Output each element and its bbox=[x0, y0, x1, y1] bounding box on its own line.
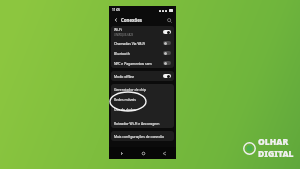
staticText: Wi-Fi bbox=[114, 27, 122, 32]
button[interactable]: Redes móveis bbox=[111, 94, 174, 104]
staticText: Modo offline bbox=[114, 74, 135, 79]
button[interactable]: Toggle bbox=[163, 41, 171, 45]
staticText: Bluetooth bbox=[114, 51, 130, 56]
button[interactable]: Gerenciador de chip bbox=[111, 84, 174, 94]
button[interactable]: Chamadas Via Wi-Fi bbox=[111, 38, 174, 48]
button[interactable]: Mais configurações de conexão bbox=[111, 131, 174, 141]
button[interactable]: Recents bbox=[117, 149, 125, 157]
button[interactable]: Toggle bbox=[163, 74, 171, 78]
button[interactable]: Home bbox=[139, 149, 147, 157]
staticText: Uso de dados bbox=[114, 107, 136, 112]
staticText: Roteador Wi-Fi e Ancoragem bbox=[114, 121, 160, 126]
button[interactable]: Roteador Wi-Fi e Ancoragem bbox=[111, 118, 174, 128]
staticText: UNIFIQUE-6823 bbox=[114, 33, 134, 37]
staticText: Chamadas Via Wi-Fi bbox=[114, 41, 146, 46]
button[interactable]: Bluetooth bbox=[111, 48, 174, 58]
staticText: Gerenciador de chip bbox=[114, 87, 147, 92]
button[interactable]: Back bbox=[112, 16, 120, 24]
staticText: Redes móveis bbox=[114, 97, 136, 102]
button[interactable]: Toggle bbox=[163, 30, 171, 34]
staticText: Conexões bbox=[121, 17, 142, 23]
button[interactable]: Toggle bbox=[163, 51, 171, 55]
staticText: Mais configurações de conexão bbox=[114, 134, 164, 139]
button[interactable]: Uso de dados bbox=[111, 104, 174, 114]
staticText: NFC e Pagamentos sem contato bbox=[114, 61, 163, 66]
staticText: OLHAR bbox=[258, 136, 289, 148]
button[interactable]: NFC e Pagamentos sem contato bbox=[111, 58, 174, 68]
staticText: DIGITAL bbox=[258, 148, 294, 160]
button[interactable]: Toggle bbox=[163, 61, 171, 65]
button[interactable]: Wi-Fi bbox=[111, 26, 174, 38]
button[interactable]: Back bbox=[160, 149, 168, 157]
staticText: 11:05 bbox=[112, 8, 121, 12]
button[interactable]: Search bbox=[165, 16, 173, 24]
button[interactable]: Modo offline bbox=[111, 71, 174, 81]
